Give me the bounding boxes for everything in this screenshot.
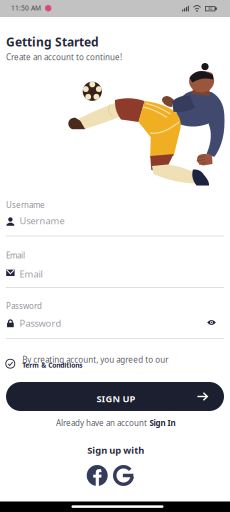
staticText: Email <box>19 268 42 280</box>
button[interactable]: SIGN UP <box>6 382 224 411</box>
button[interactable]: Sign up with Google <box>113 465 134 486</box>
button[interactable]: Term & Conditions <box>22 361 82 370</box>
staticText: 82 <box>208 6 212 11</box>
button[interactable]: Show password <box>205 316 218 329</box>
staticText: Password <box>19 317 61 329</box>
staticText: By creating account, you agreed to our <box>22 354 168 365</box>
staticText: Sign In <box>149 417 175 428</box>
staticText: Already have an account <box>56 417 147 428</box>
button[interactable]: Sign In <box>149 417 175 428</box>
staticText: Password <box>6 300 42 311</box>
staticText: Username <box>6 199 45 210</box>
staticText: 11:50 AM <box>11 3 41 12</box>
button[interactable]: Sign up with Facebook <box>87 465 108 486</box>
staticText: Term & Conditions <box>22 361 82 370</box>
staticText: Getting Started <box>6 34 99 50</box>
staticText: Create an account to continue! <box>6 52 122 62</box>
staticText: SIGN UP <box>96 392 135 405</box>
staticText: Email <box>6 250 25 261</box>
staticText: Username <box>19 214 64 227</box>
staticText: Sign up with <box>87 444 144 456</box>
